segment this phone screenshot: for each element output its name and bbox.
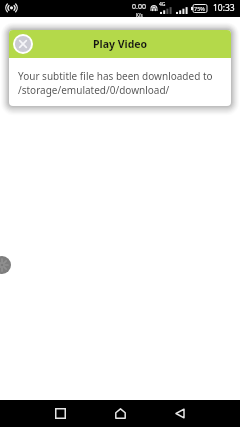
staticText: Your subtitle file has been downloaded t…: [18, 69, 213, 83]
staticText: 0.00: [132, 2, 146, 12]
staticText: K/s: [136, 12, 143, 18]
button[interactable]: Back: [165, 400, 195, 427]
staticText: 4G: [159, 1, 166, 8]
staticText: 75%: [194, 5, 205, 12]
button[interactable]: Home: [105, 400, 135, 427]
button[interactable]: Open menu: [0, 256, 11, 274]
staticText: /storage/emulated/0/download/: [18, 83, 170, 97]
button[interactable]: Recent apps: [45, 400, 75, 427]
staticText: 10:33: [213, 2, 235, 14]
staticText: Play Video: [93, 37, 148, 51]
button[interactable]: Close: [13, 34, 33, 54]
